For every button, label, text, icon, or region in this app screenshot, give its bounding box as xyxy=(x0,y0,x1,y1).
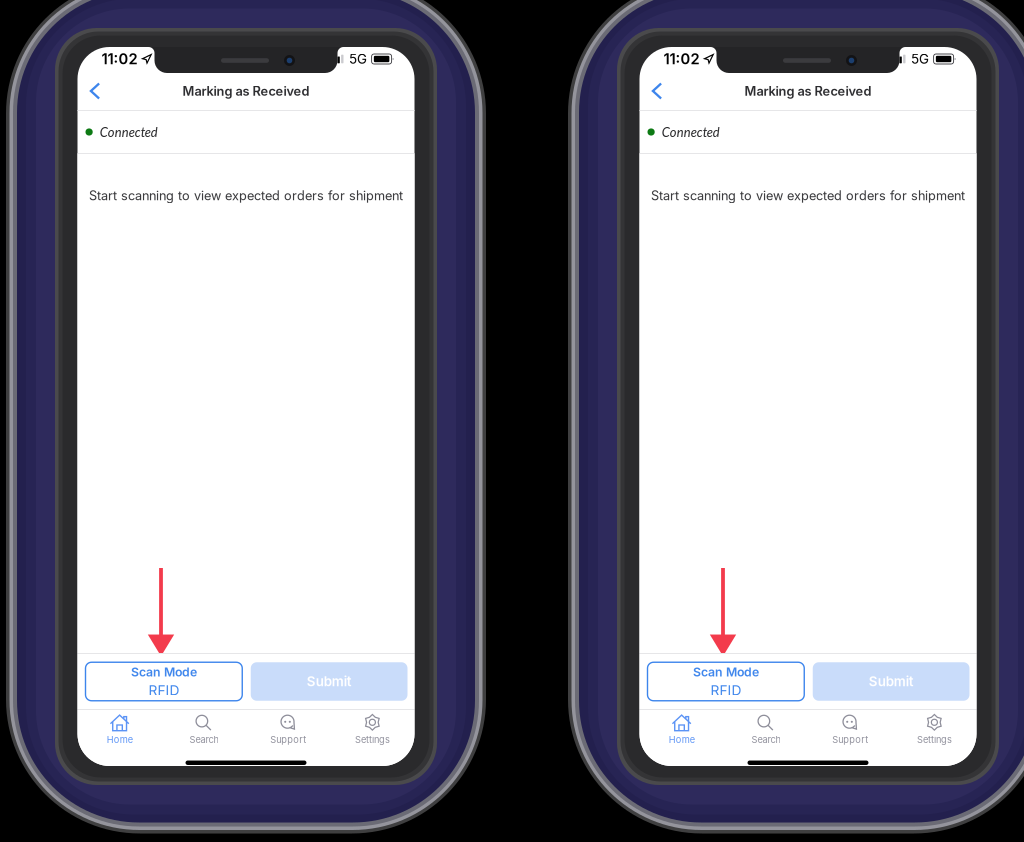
staticText: Connected xyxy=(662,124,720,140)
staticText: Scan Mode xyxy=(693,664,759,679)
staticText: Start scanning to view expected orders f… xyxy=(651,188,965,203)
staticText: Settings xyxy=(917,734,952,745)
staticText: Home xyxy=(107,734,133,745)
button[interactable]: Support xyxy=(808,710,892,766)
staticText: Settings xyxy=(355,734,390,745)
staticText: Marking as Received xyxy=(182,83,309,99)
staticText: Search xyxy=(751,734,780,745)
staticText: Support xyxy=(270,734,306,745)
staticText: RFID xyxy=(148,682,179,698)
button[interactable]: Home xyxy=(77,710,162,766)
button[interactable]: Back xyxy=(77,73,115,109)
staticText: Support xyxy=(832,734,868,745)
button[interactable]: Back xyxy=(639,73,677,109)
staticText: Search xyxy=(189,734,218,745)
button[interactable]: Scan Mode xyxy=(647,662,804,701)
button[interactable]: Support xyxy=(246,710,330,766)
button[interactable]: Submit xyxy=(251,662,408,701)
button[interactable]: Search xyxy=(724,710,808,766)
button[interactable]: Scan Mode xyxy=(85,662,242,701)
staticText: 5G xyxy=(349,51,367,67)
staticText: Connected xyxy=(100,124,158,140)
staticText: Scan Mode xyxy=(131,664,197,679)
staticText: Home xyxy=(669,734,695,745)
staticText: 11:02 xyxy=(101,50,137,68)
staticText: Start scanning to view expected orders f… xyxy=(89,188,403,203)
button[interactable]: Submit xyxy=(813,662,970,701)
staticText: Submit xyxy=(307,673,352,689)
button[interactable]: Search xyxy=(162,710,246,766)
staticText: RFID xyxy=(710,682,741,698)
button[interactable]: Home xyxy=(639,710,724,766)
button[interactable]: Settings xyxy=(892,710,976,766)
staticText: Submit xyxy=(869,673,914,689)
staticText: 5G xyxy=(911,51,929,67)
staticText: 11:02 xyxy=(663,50,699,68)
button[interactable]: Settings xyxy=(330,710,414,766)
staticText: Marking as Received xyxy=(744,83,871,99)
